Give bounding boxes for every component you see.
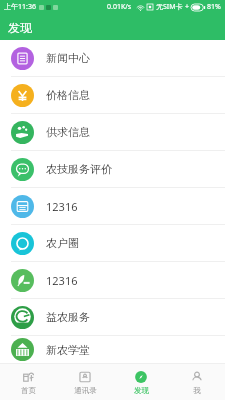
staticText: 农户圈 [46,236,79,250]
staticText: 无SIM卡 [156,2,183,12]
staticText: 发现 [134,386,149,395]
button[interactable]: 农技服务评价 [0,151,225,188]
button[interactable]: 12316 [0,188,225,225]
button[interactable]: 12316 [0,262,225,299]
staticText: 新农学堂 [46,343,90,357]
staticText: 上午11:36 [4,2,36,12]
button[interactable]: 首页 [0,364,57,400]
button[interactable]: 益农服务 [0,299,225,336]
button[interactable]: 价格信息 [0,77,225,114]
staticText: 价格信息 [46,88,90,102]
staticText: 通讯录 [74,386,97,395]
button[interactable]: 我 [169,364,225,400]
staticText: 首页 [21,386,36,395]
staticText: 发现 [8,20,32,35]
staticText: 我 [193,386,201,395]
button[interactable]: 发现 [113,364,169,400]
staticText: 供求信息 [46,125,90,139]
staticText: 0.01K/s [107,2,132,12]
button[interactable]: 新闻中心 [0,40,225,77]
staticText: + [185,2,190,12]
staticText: 12316 [46,199,78,214]
button[interactable]: 新农学堂 [0,336,225,363]
staticText: 12316 [46,273,78,288]
button[interactable]: 农户圈 [0,225,225,262]
staticText: 益农服务 [46,310,90,324]
staticText: 81% [207,2,221,12]
staticText: 农技服务评价 [46,162,112,176]
button[interactable]: 通讯录 [57,364,113,400]
button[interactable]: 供求信息 [0,114,225,151]
staticText: 新闻中心 [46,51,90,65]
